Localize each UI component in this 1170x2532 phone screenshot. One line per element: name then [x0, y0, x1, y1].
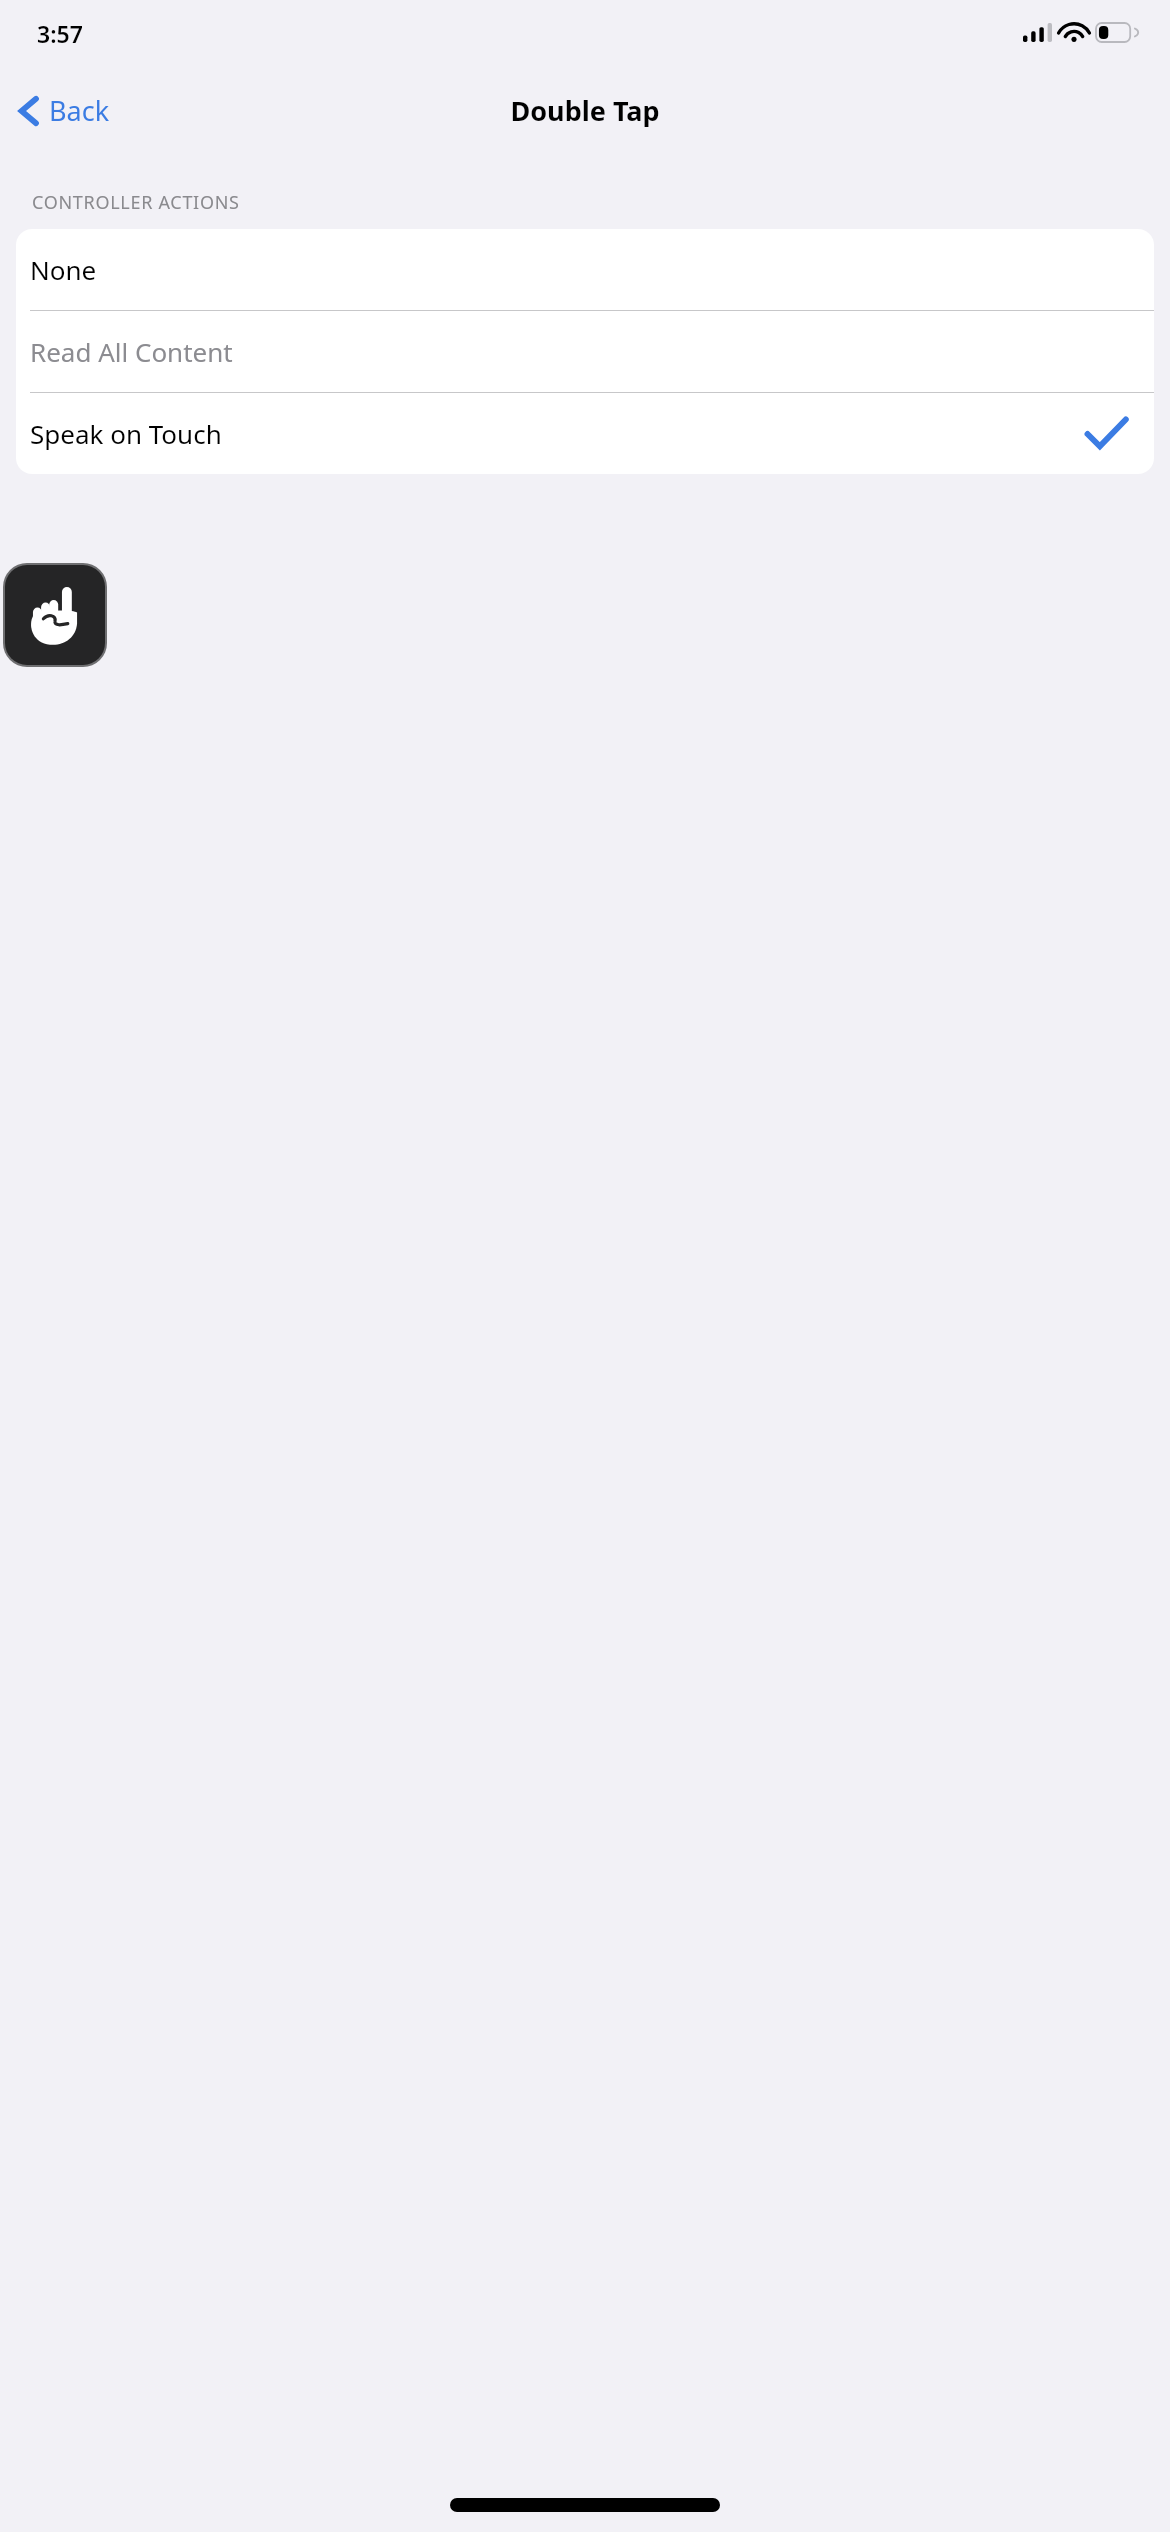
staticText: Speak on Touch: [30, 416, 222, 451]
staticText: Back: [49, 92, 110, 129]
staticText: None: [30, 252, 97, 287]
button[interactable]: None: [16, 229, 1154, 310]
button[interactable]: AssistiveTouch: [5, 565, 105, 665]
staticText: 3:57: [37, 18, 83, 49]
staticText: CONTROLLER ACTIONS: [32, 190, 240, 215]
staticText: Read All Content: [30, 334, 233, 369]
button[interactable]: Back: [0, 84, 122, 137]
button[interactable]: Speak on Touch: [16, 393, 1154, 474]
button[interactable]: Read All Content: [16, 311, 1154, 392]
staticText: Double Tap: [510, 92, 660, 129]
